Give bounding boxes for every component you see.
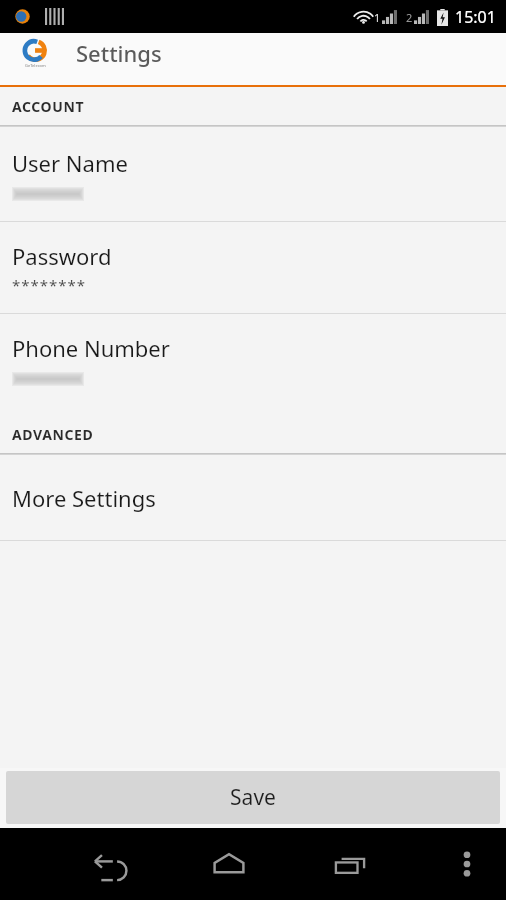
button[interactable]: Recent apps xyxy=(319,833,381,895)
staticText: More Settings xyxy=(12,483,156,513)
staticText: Settings xyxy=(76,38,162,68)
staticText: 1 xyxy=(374,10,381,25)
staticText: 15:01 xyxy=(455,6,496,28)
button[interactable]: Home xyxy=(198,833,260,895)
button[interactable]: Password xyxy=(0,222,506,313)
staticText: 2 xyxy=(406,10,413,25)
button[interactable]: Back xyxy=(78,833,140,895)
staticText: ******** xyxy=(12,275,87,295)
button[interactable]: More Settings xyxy=(0,455,506,540)
staticText: GeTelecom xyxy=(25,63,46,68)
staticText: ACCOUNT xyxy=(12,97,85,116)
button[interactable]: User Name xyxy=(0,127,506,221)
staticText: ADVANCED xyxy=(12,425,94,444)
staticText: Password xyxy=(12,241,112,271)
button[interactable]: GeTelecom home xyxy=(15,33,55,73)
button[interactable]: More options xyxy=(440,837,494,891)
staticText: Phone Number xyxy=(12,333,170,363)
button[interactable]: Phone Number xyxy=(0,314,506,405)
staticText: User Name xyxy=(12,148,128,178)
staticText: Save xyxy=(230,783,276,812)
button[interactable]: Save xyxy=(6,771,500,824)
